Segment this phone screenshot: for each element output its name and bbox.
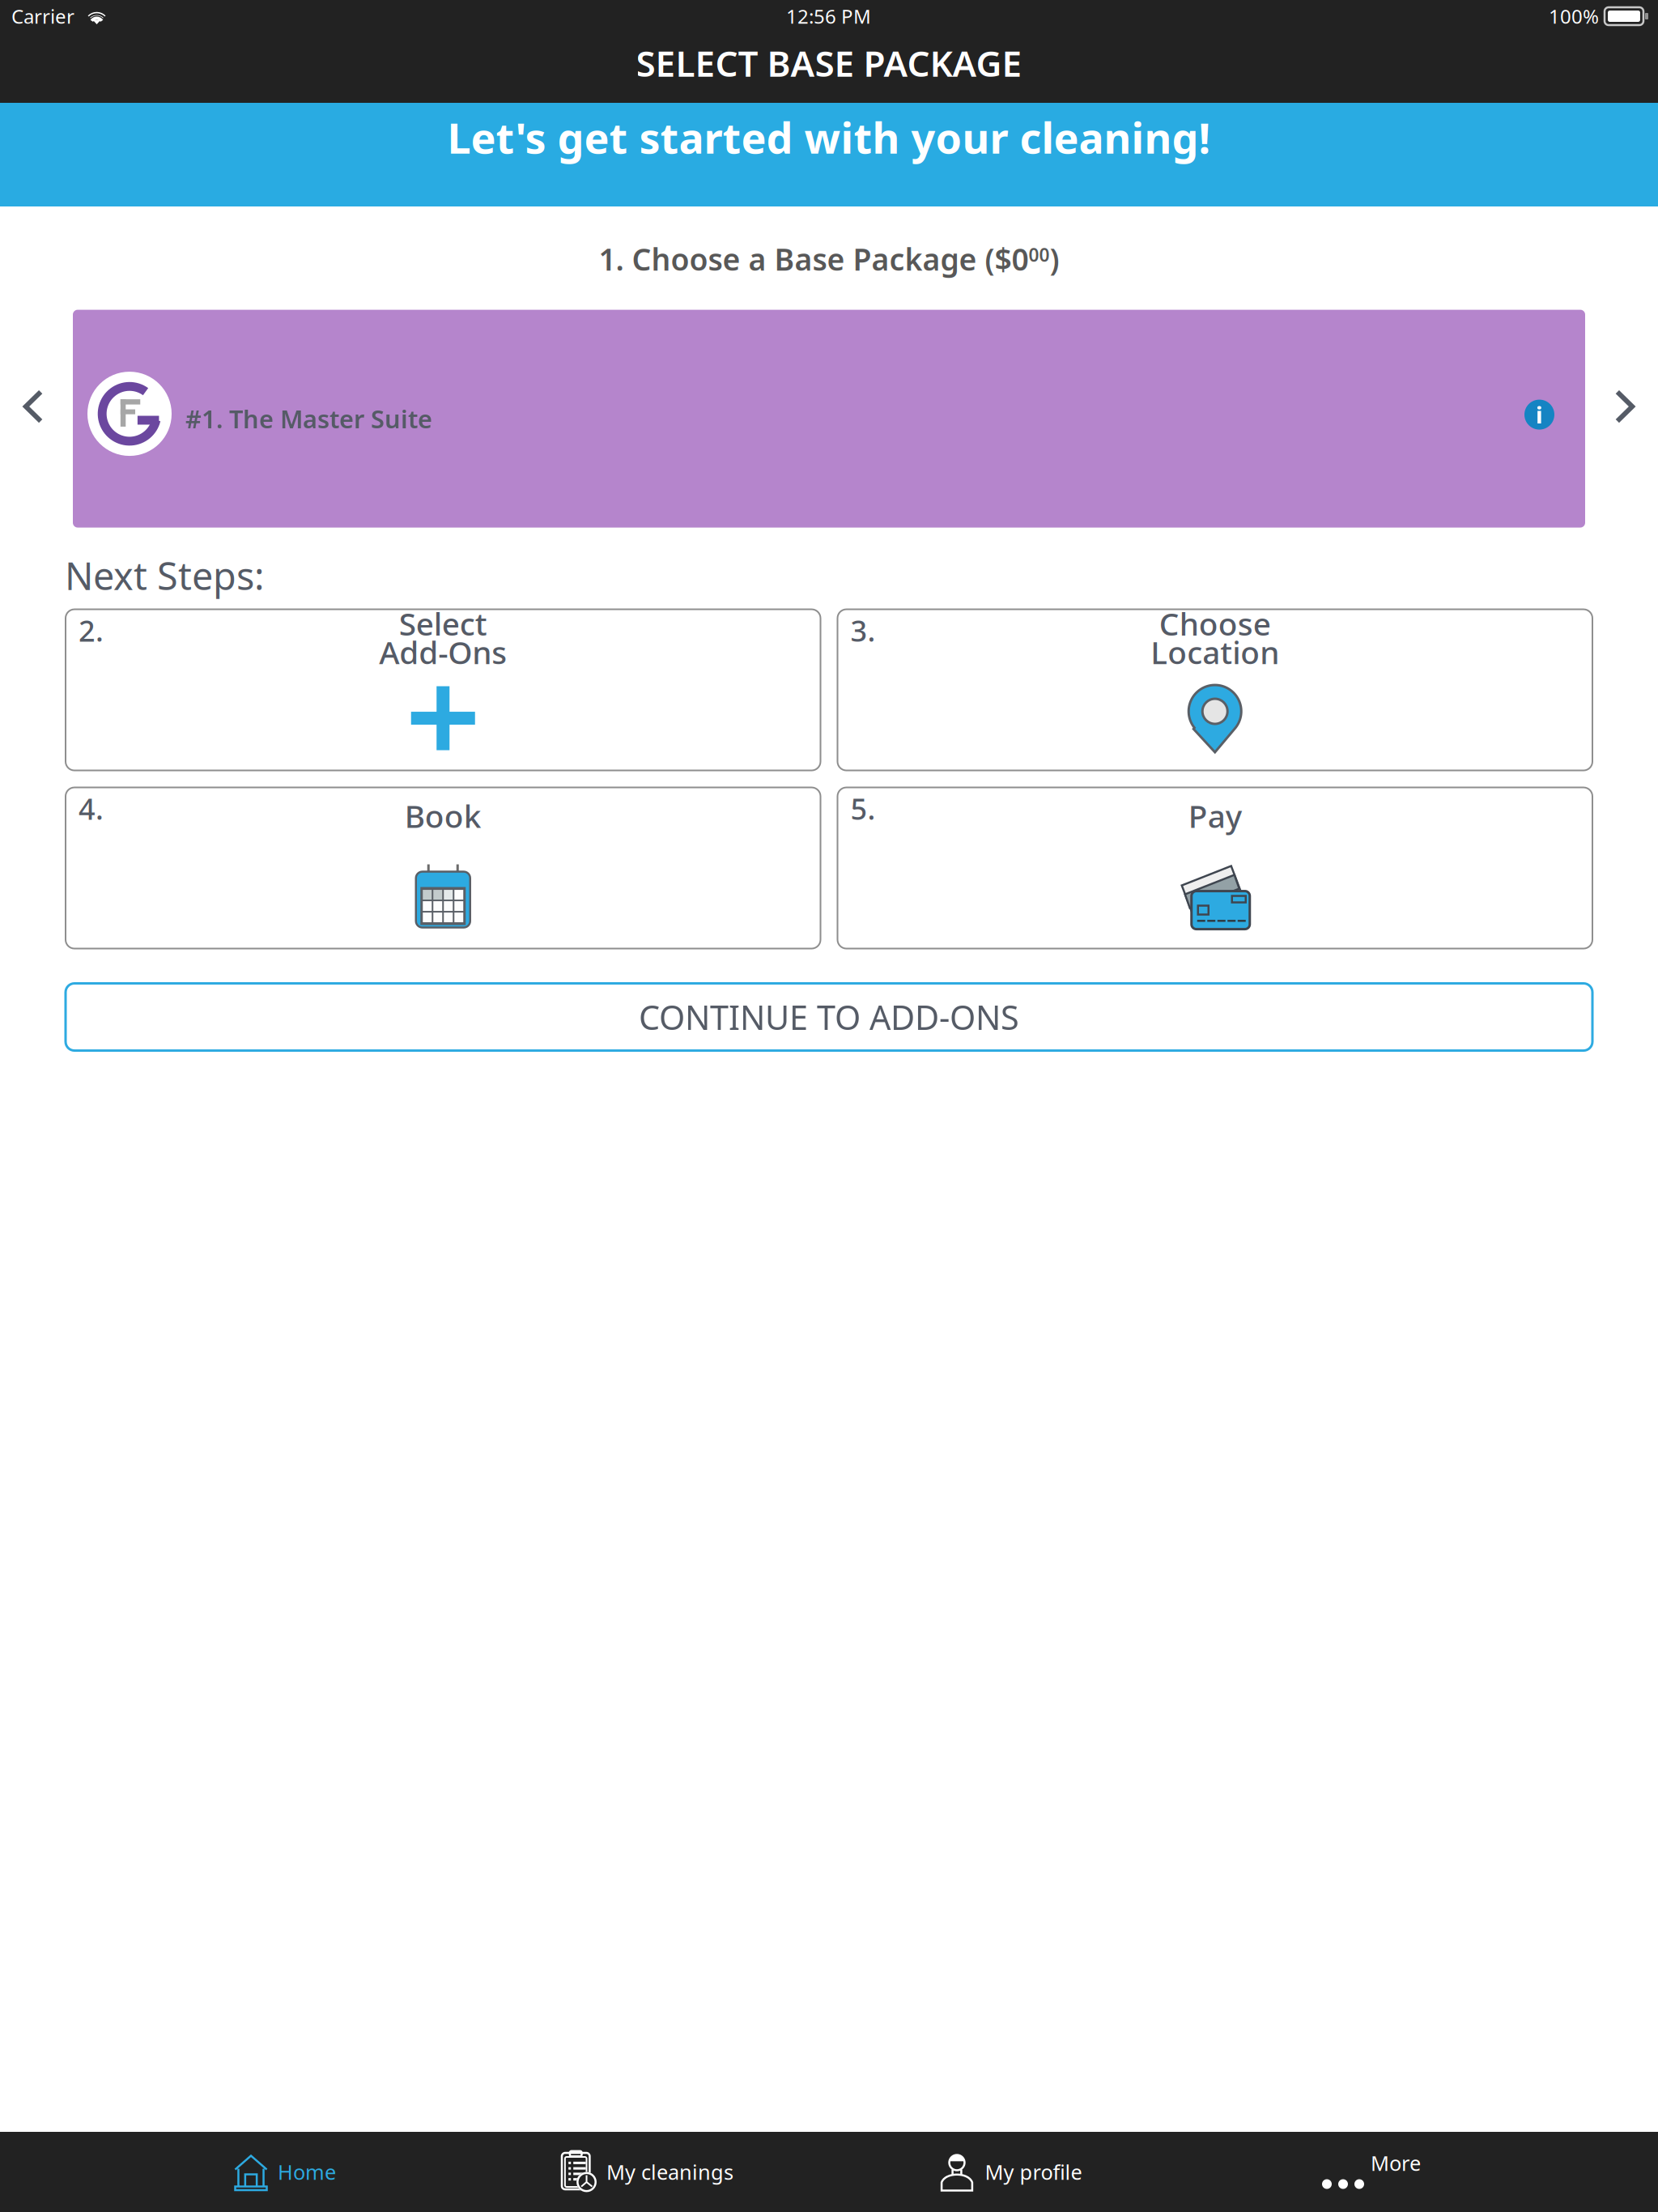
staticText: SELECT BASE PACKAGE bbox=[636, 39, 1022, 87]
staticText: Next Steps: bbox=[65, 550, 265, 600]
staticText: Choose bbox=[1159, 603, 1271, 644]
staticText: CONTINUE TO ADD-ONS bbox=[639, 995, 1019, 1039]
button[interactable]: Next package bbox=[1585, 310, 1658, 528]
staticText: 5. bbox=[850, 789, 876, 828]
button[interactable]: 3. bbox=[838, 609, 1592, 770]
staticText: 3. bbox=[850, 611, 876, 650]
staticText: i bbox=[1536, 399, 1543, 430]
button[interactable]: #1. The Master Suite bbox=[73, 310, 1585, 528]
staticText: 12:56 PM bbox=[786, 3, 871, 29]
staticText: Home bbox=[278, 2158, 336, 2186]
staticText: Location bbox=[1151, 631, 1279, 673]
staticText: 1. Choose a Base Package ($000) bbox=[599, 239, 1059, 279]
staticText: Carrier bbox=[11, 3, 74, 29]
button[interactable]: Home bbox=[104, 2132, 466, 2212]
button[interactable]: 5. bbox=[838, 787, 1592, 949]
button[interactable]: 2. bbox=[66, 609, 820, 770]
staticText: My cleanings bbox=[606, 2158, 733, 2186]
staticText: My profile bbox=[985, 2158, 1082, 2186]
staticText: Let's get started with your cleaning! bbox=[447, 109, 1211, 165]
button[interactable]: Previous package bbox=[0, 310, 73, 528]
staticText: Pay bbox=[1188, 795, 1242, 837]
staticText: Select bbox=[399, 603, 487, 644]
staticText: 2. bbox=[79, 611, 104, 650]
button[interactable]: More bbox=[1192, 2132, 1554, 2212]
staticText: More bbox=[1371, 2149, 1421, 2177]
button[interactable]: My profile bbox=[829, 2132, 1192, 2212]
button[interactable]: 4. bbox=[66, 787, 820, 949]
staticText: 4. bbox=[79, 789, 104, 828]
staticText: Add-Ons bbox=[379, 631, 507, 673]
staticText: 100% bbox=[1549, 3, 1599, 29]
button[interactable]: CONTINUE TO ADD-ONS bbox=[0, 983, 1658, 1051]
staticText: Book bbox=[405, 795, 482, 837]
button[interactable]: My cleanings bbox=[466, 2132, 829, 2212]
staticText: #1. The Master Suite bbox=[185, 402, 432, 435]
